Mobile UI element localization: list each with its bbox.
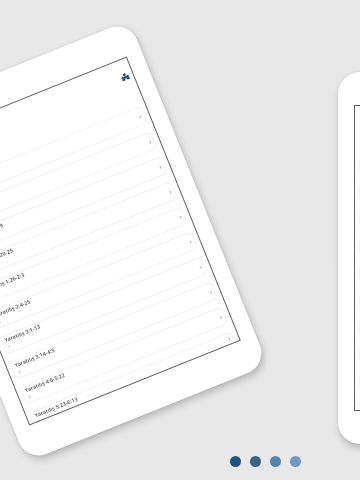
staticText: Yaratılış 1:26-2:3 [0,271,26,293]
button[interactable]: Topluluk [120,71,130,82]
staticText: Yaratılış 2:4-25 [0,297,31,318]
staticText: 6 [0,319,2,324]
staticText: › [168,187,174,197]
button[interactable]: Yaratılış 4:6-5:22 [19,306,229,405]
button[interactable]: Sayfa 2 [250,456,261,467]
button[interactable]: Yaratılış 2:4-25 [0,231,199,330]
staticText: › [208,287,214,297]
button[interactable]: Yaratılış 4:6-5:22 [359,318,360,337]
staticText: › [157,162,164,172]
staticText: › [188,237,194,247]
button[interactable]: Yaratılış 3:1-13 [0,256,209,355]
button[interactable]: Yaratılış 1:1-5 [0,106,148,205]
other: Topluluk [120,71,130,82]
staticText: 8 [18,369,22,374]
button[interactable]: Yaratılış 3:1-13 [359,264,360,283]
button[interactable]: Yaratılış 1:6-13 [0,131,158,230]
staticText: Yaratılış 1:20-25 [0,246,14,268]
staticText: 7 [8,344,12,349]
button[interactable]: Yaratılış 5:23-6:13 [29,331,236,424]
button[interactable]: Yaratılış 8:1-9:17 [359,399,360,411]
staticText: › [178,212,184,222]
button[interactable]: Yaratılış 5:23-6:13 [359,345,360,364]
button[interactable]: Yaratılış 6:14-7:24 [359,372,360,391]
staticText: 9 [28,394,32,399]
button[interactable]: Sayfa 4 [290,456,301,467]
button[interactable]: Yaratılış 1:20-25 [0,181,178,280]
staticText: Yaratılış 1:14-19 [0,221,4,243]
button[interactable]: Yaratılış 1:14-19 [359,156,360,175]
button[interactable]: Sayfa 3 [270,456,281,467]
button[interactable]: Yaratılış 1:20-25 [359,183,360,202]
button[interactable]: Yaratılış 1:14-19 [0,156,168,255]
staticText: › [147,136,154,147]
staticText: Yaratılış 5:23-6:13 [33,395,79,418]
button[interactable]: Yaratılış 1:26-2:3 [359,210,360,229]
staticText: › [218,312,224,322]
button[interactable]: Sayfa 1 [230,456,241,467]
button[interactable]: Yaratılış 2:4-25 [359,237,360,256]
button[interactable]: Yaratılış 3:14-4:5 [9,281,219,380]
staticText: › [198,262,204,272]
staticText: › [137,111,144,122]
staticText: Yaratılış 3:14-4:5 [13,346,56,368]
staticText: › [226,333,233,344]
staticText: Yaratılış 3:1-13 [3,323,41,343]
staticText: 10 [38,418,43,422]
button[interactable]: Yaratılış 1:26-2:3 [0,206,188,305]
button[interactable]: Yaratılış 3:14-4:5 [359,291,360,310]
staticText: Yaratılış 4:6-5:22 [23,371,66,393]
